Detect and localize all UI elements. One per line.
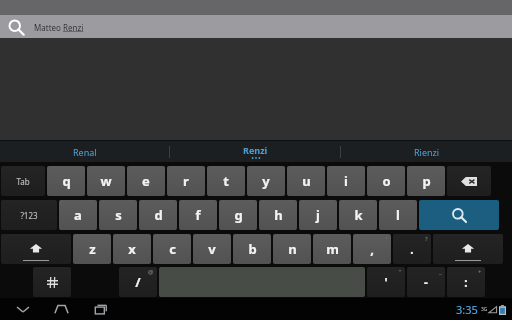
button[interactable]: v — [193, 234, 231, 264]
button[interactable]: g — [219, 200, 257, 230]
button[interactable]: Renzi — [170, 141, 341, 162]
button[interactable]: Shift — [1, 234, 71, 264]
button[interactable]: c — [153, 234, 191, 264]
staticText: 3:35 — [456, 302, 478, 317]
staticText: : — [464, 274, 468, 290]
staticText: c — [169, 240, 176, 258]
staticText: p — [422, 172, 431, 190]
staticText: b — [248, 240, 257, 258]
button[interactable]: y — [247, 166, 285, 196]
staticText: f — [195, 206, 201, 224]
staticText: h — [274, 206, 283, 224]
button[interactable]: Search — [419, 200, 499, 230]
button[interactable]: x — [113, 234, 151, 264]
staticText: ' — [386, 235, 388, 243]
button[interactable]: q — [47, 166, 85, 196]
staticText: w — [100, 172, 112, 190]
staticText: e — [142, 172, 150, 190]
button[interactable]: Keyboard settings — [33, 267, 71, 297]
button[interactable]: Backspace — [447, 166, 491, 196]
button[interactable]: e — [127, 166, 165, 196]
button[interactable]: i — [327, 166, 365, 196]
staticText: Rienzi — [414, 146, 440, 158]
button[interactable]: l — [379, 200, 417, 230]
staticText: a — [74, 206, 82, 224]
button[interactable]: . — [393, 234, 431, 264]
staticText: m — [326, 240, 339, 258]
staticText: ' — [384, 274, 388, 290]
button[interactable]: h — [259, 200, 297, 230]
staticText: _ — [439, 268, 442, 276]
button[interactable]: b — [233, 234, 271, 264]
button[interactable]: a — [59, 200, 97, 230]
button[interactable]: Hide keyboard — [10, 299, 36, 319]
staticText: Renzi — [63, 22, 84, 33]
staticText: Renzi — [243, 144, 268, 156]
button[interactable]: w — [87, 166, 125, 196]
staticText: g — [234, 206, 243, 224]
button[interactable]: - — [407, 267, 445, 297]
button[interactable]: f — [179, 200, 217, 230]
staticText: / — [135, 273, 141, 291]
staticText: ?123 — [20, 210, 38, 221]
staticText: ? — [425, 235, 428, 243]
staticText: u — [302, 172, 311, 190]
staticText: - — [424, 274, 428, 290]
button[interactable]: Home — [48, 299, 74, 319]
staticText: s — [115, 206, 122, 224]
staticText: y — [262, 172, 270, 190]
button[interactable]: Matteo — [0, 15, 512, 38]
button[interactable]: Tab — [1, 166, 45, 196]
staticText: , — [370, 240, 374, 258]
button[interactable]: ?123 — [1, 200, 57, 230]
button[interactable]: n — [273, 234, 311, 264]
staticText: Renal — [73, 146, 97, 158]
button[interactable]: k — [339, 200, 377, 230]
staticText: z — [89, 240, 96, 258]
button[interactable]: j — [299, 200, 337, 230]
staticText: r — [183, 172, 189, 190]
button[interactable]: s — [99, 200, 137, 230]
staticText: n — [288, 240, 297, 258]
staticText: v — [208, 240, 216, 258]
button[interactable]: Renal — [0, 141, 170, 162]
button[interactable]: ' — [367, 267, 405, 297]
button[interactable]: Rienzi — [341, 141, 512, 162]
staticText: " — [399, 268, 402, 276]
staticText: k — [354, 206, 363, 224]
staticText: q — [62, 172, 71, 190]
button[interactable]: o — [367, 166, 405, 196]
staticText: . — [410, 241, 414, 257]
button[interactable]: Shift — [433, 234, 503, 264]
staticText: 3G — [481, 306, 488, 313]
button[interactable]: p — [407, 166, 445, 196]
staticText: Tab — [16, 176, 30, 187]
button[interactable]: u — [287, 166, 325, 196]
staticText: @ — [148, 268, 154, 276]
button[interactable]: Recent apps — [86, 299, 112, 319]
button[interactable]: m — [313, 234, 351, 264]
staticText: Matteo — [34, 22, 63, 33]
staticText: x — [128, 240, 136, 258]
staticText: j — [316, 206, 320, 224]
button[interactable]: r — [167, 166, 205, 196]
button[interactable]: t — [207, 166, 245, 196]
button[interactable]: , — [353, 234, 391, 264]
staticText: + — [478, 268, 482, 276]
staticText: i — [344, 172, 348, 190]
staticText: l — [396, 206, 400, 224]
staticText: t — [223, 172, 229, 190]
staticText: d — [154, 206, 163, 224]
button[interactable]: z — [73, 234, 111, 264]
button[interactable]: d — [139, 200, 177, 230]
staticText: o — [382, 172, 391, 190]
button[interactable]: / — [119, 267, 157, 297]
button[interactable]: : — [447, 267, 485, 297]
